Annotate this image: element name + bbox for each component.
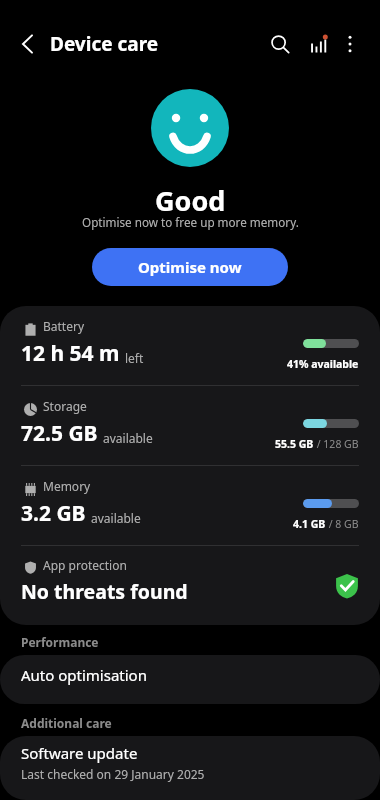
button[interactable]: Usage statistics xyxy=(298,24,338,64)
staticText: Additional care xyxy=(21,715,112,731)
staticText: Good xyxy=(155,182,226,214)
staticText: Device care xyxy=(50,31,159,57)
staticText: available xyxy=(103,430,153,446)
button[interactable]: Optimise now xyxy=(92,248,288,286)
staticText: available xyxy=(91,510,141,526)
staticText: 41% available xyxy=(287,357,359,371)
button[interactable]: Auto optimisation xyxy=(0,655,380,704)
button[interactable]: More options xyxy=(330,24,370,64)
button[interactable]: Software update xyxy=(0,736,380,800)
staticText: Memory xyxy=(43,478,91,494)
staticText: / 8 GB xyxy=(326,517,359,531)
staticText: Performance xyxy=(21,634,99,650)
button[interactable]: Storage xyxy=(0,386,380,465)
button[interactable]: Search xyxy=(260,24,300,64)
staticText: Optimise now to free up more memory. xyxy=(82,214,299,230)
staticText: Auto optimisation xyxy=(21,665,147,685)
button[interactable]: Back xyxy=(8,24,48,64)
button[interactable]: App protection xyxy=(0,546,380,625)
staticText: 12 h 54 m xyxy=(21,339,120,368)
staticText: Storage xyxy=(43,398,87,414)
staticText: App protection xyxy=(43,557,127,573)
staticText: left xyxy=(125,350,144,366)
staticText: 55.5 GB xyxy=(275,437,314,451)
staticText: 3.2 GB xyxy=(21,499,86,528)
staticText: Software update xyxy=(21,743,138,763)
staticText: No threats found xyxy=(21,578,188,605)
staticText: / 128 GB xyxy=(314,437,359,451)
button[interactable]: Memory xyxy=(0,466,380,545)
staticText: Optimise now xyxy=(138,257,242,277)
button[interactable]: Battery xyxy=(0,306,380,385)
staticText: Battery xyxy=(43,318,85,334)
staticText: 4.1 GB xyxy=(293,517,326,531)
staticText: 72.5 GB xyxy=(21,419,98,448)
staticText: Last checked on 29 January 2025 xyxy=(21,766,205,782)
